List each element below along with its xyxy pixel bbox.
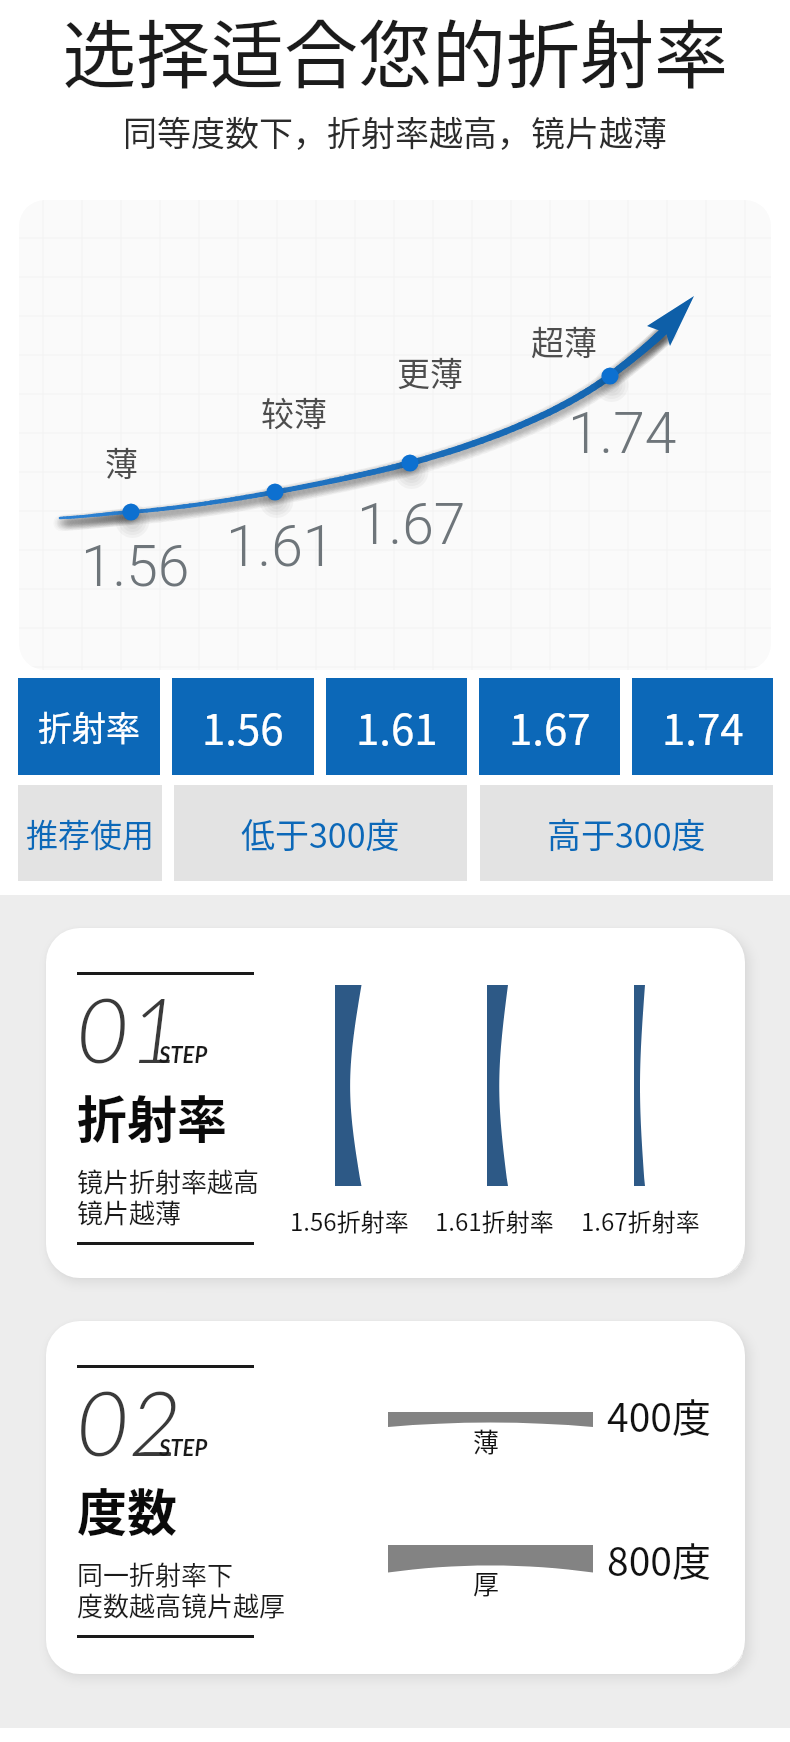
staticText: 超薄	[531, 317, 597, 365]
staticText: 02	[76, 1366, 182, 1475]
staticText: 01	[76, 973, 182, 1082]
button[interactable]: 折射率	[18, 678, 160, 775]
staticText: 薄	[473, 1422, 500, 1460]
button[interactable]: 01	[46, 928, 745, 1278]
staticText: 1.56	[81, 533, 190, 600]
button[interactable]: 高于300度	[480, 785, 773, 881]
staticText: 选择适合您的折射率	[0, 0, 790, 103]
staticText: 1.61折射率	[435, 1203, 554, 1238]
staticText: 镜片越薄	[77, 1193, 182, 1231]
staticText: 同等度数下，折射率越高，镜片越薄	[0, 107, 790, 156]
button[interactable]: 1.61	[326, 678, 467, 775]
staticText: 1.61	[356, 696, 438, 757]
button[interactable]: 推荐使用	[18, 785, 162, 881]
staticText: STEP	[159, 1434, 208, 1460]
staticText: 800度	[607, 1531, 711, 1587]
button[interactable]: 1.56	[172, 678, 314, 775]
staticText: 1.56	[202, 696, 284, 757]
staticText: 1.74	[662, 696, 744, 757]
staticText: 1.56折射率	[290, 1203, 409, 1238]
staticText: 400度	[607, 1387, 711, 1443]
staticText: 1.74	[568, 400, 677, 467]
staticText: 镜片折射率越高	[77, 1162, 260, 1200]
button[interactable]: 1.74	[632, 678, 773, 775]
staticText: 1.67	[357, 491, 466, 558]
staticText: 同一折射率下	[77, 1555, 234, 1593]
staticText: 较薄	[261, 388, 327, 436]
staticText: STEP	[159, 1041, 208, 1067]
staticText: 度数越高镜片越厚	[77, 1586, 286, 1624]
staticText: 1.67折射率	[581, 1203, 700, 1238]
button[interactable]: 1.67	[479, 678, 620, 775]
staticText: 推荐使用	[26, 810, 155, 856]
staticText: 更薄	[397, 348, 463, 396]
staticText: 厚	[473, 1564, 500, 1602]
staticText: 薄	[105, 438, 138, 486]
staticText: 低于300度	[241, 809, 400, 858]
staticText: 1.61	[226, 513, 335, 580]
staticText: 高于300度	[547, 809, 706, 858]
staticText: 度数	[77, 1473, 177, 1545]
staticText: 1.67	[509, 696, 591, 757]
button[interactable]: 02	[46, 1321, 745, 1674]
button[interactable]: 低于300度	[174, 785, 467, 881]
staticText: 折射率	[77, 1080, 227, 1152]
staticText: 折射率	[38, 702, 140, 751]
